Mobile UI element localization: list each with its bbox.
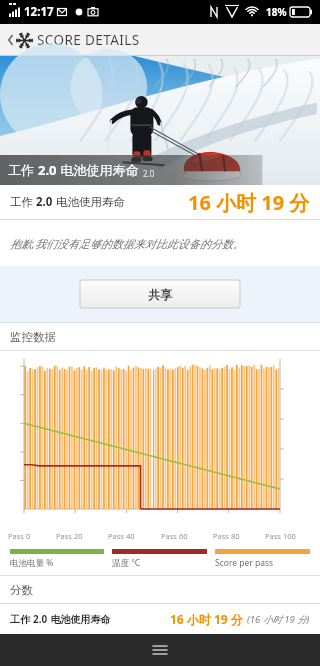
staticText: Score per pass [215, 557, 274, 569]
button[interactable]: Menu [143, 634, 177, 666]
staticText: Pass 40 [108, 531, 135, 541]
button[interactable]: Back [2, 31, 20, 49]
staticText: 2.0 [33, 612, 48, 626]
staticText: 16 小时 19 分 [188, 189, 310, 216]
staticText: 工作 [10, 194, 36, 210]
staticText: 2.0 [38, 161, 57, 179]
staticText: 温度 °C [112, 557, 141, 569]
staticText: Pass 20 [56, 531, 83, 541]
staticText: 监控数据 [10, 330, 56, 344]
staticText: Pass 0 [8, 531, 31, 541]
staticText: 抱歉,我们没有足够的数据来对比此设备的分数。 [10, 236, 244, 251]
staticText: 工作 [10, 612, 33, 626]
staticText: 16 小时 19 分 [170, 611, 243, 627]
staticText: 工作 [8, 161, 38, 179]
staticText: Pass 100 [265, 531, 296, 541]
button[interactable]: 共享 [80, 280, 240, 308]
staticText: 2.0 [143, 168, 155, 179]
staticText: SCORE DETAILS [37, 31, 140, 49]
staticText: Pass 80 [213, 531, 240, 541]
staticText: 电池电量 % [10, 557, 54, 569]
staticText: (16 小时 19 分) [247, 613, 310, 626]
staticText: 2.0 [36, 194, 53, 210]
staticText: Pass 60 [161, 531, 188, 541]
staticText: 12:17 [24, 4, 54, 20]
staticText: 分数 [10, 583, 33, 597]
staticText: 电池使用寿命 [57, 161, 139, 179]
staticText: 电池使用寿命 [53, 194, 125, 210]
staticText: 共享 [148, 287, 172, 302]
staticText: 电池使用寿命 [48, 612, 111, 626]
staticText: 18% [266, 5, 287, 19]
